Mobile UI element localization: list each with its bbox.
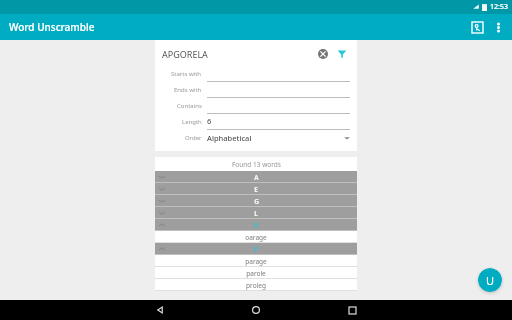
button[interactable]: L: [155, 207, 357, 219]
button[interactable]: G: [155, 195, 357, 207]
staticText: 6: [207, 116, 212, 126]
button[interactable]: parole: [155, 267, 357, 279]
staticText: E: [254, 185, 258, 194]
button[interactable]: Filter: [334, 46, 350, 62]
button[interactable]: Order: [162, 130, 350, 146]
button[interactable]: Unscramble: [478, 268, 502, 292]
button[interactable]: E: [155, 183, 357, 195]
staticText: Word Unscramble: [9, 20, 95, 34]
button[interactable]: Ends with: [162, 82, 350, 98]
button[interactable]: Recents: [342, 300, 362, 320]
button[interactable]: O: [155, 219, 357, 231]
button[interactable]: Dictionary: [466, 16, 488, 38]
button[interactable]: A: [155, 171, 357, 183]
staticText: oarage: [245, 233, 267, 242]
button[interactable]: Contains: [162, 98, 350, 114]
button[interactable]: Starts with: [162, 66, 350, 82]
staticText: A: [254, 173, 259, 182]
staticText: Found 13 words: [232, 160, 281, 169]
button[interactable]: Home: [246, 300, 266, 320]
button[interactable]: proleg: [155, 279, 357, 291]
staticText: Length: [182, 118, 202, 126]
staticText: APGORELA: [162, 48, 208, 60]
button[interactable]: oarage: [155, 231, 357, 243]
staticText: G: [254, 197, 259, 206]
button[interactable]: Length: [162, 114, 350, 130]
button[interactable]: Back: [150, 300, 170, 320]
staticText: Ends with: [174, 86, 202, 94]
staticText: Alphabetical: [207, 133, 252, 143]
staticText: proleg: [246, 281, 266, 290]
button[interactable]: More options: [488, 17, 508, 37]
staticText: parole: [246, 269, 266, 278]
staticText: Contains: [177, 102, 202, 110]
staticText: Starts with: [171, 70, 202, 78]
staticText: U: [486, 273, 495, 288]
staticText: 12:53: [490, 2, 508, 12]
button[interactable]: P: [155, 243, 357, 255]
staticText: O: [253, 221, 259, 230]
staticText: L: [254, 209, 258, 218]
staticText: P: [254, 245, 258, 254]
staticText: parage: [245, 257, 267, 266]
button[interactable]: parage: [155, 255, 357, 267]
button[interactable]: Clear: [315, 46, 331, 62]
staticText: Order: [185, 134, 202, 142]
